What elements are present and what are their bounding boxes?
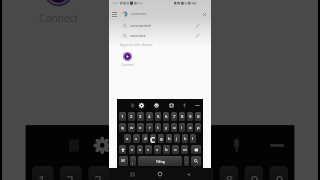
button[interactable]: 8 xyxy=(219,166,238,180)
staticText: 8 xyxy=(226,172,235,180)
button[interactable]: h xyxy=(166,134,172,143)
staticText: C xyxy=(150,134,156,143)
button[interactable]: d xyxy=(142,134,148,143)
staticText: 1 xyxy=(121,114,124,120)
button[interactable]: j xyxy=(174,134,180,143)
button[interactable]: 5 xyxy=(155,112,161,121)
staticText: 9 xyxy=(251,172,260,180)
button[interactable]: 9 xyxy=(244,166,263,180)
staticText: t xyxy=(157,125,159,131)
button[interactable]: connected xyxy=(109,21,211,31)
staticText: 2 xyxy=(130,114,133,120)
staticText: 4 xyxy=(148,114,151,120)
button[interactable]: C xyxy=(150,134,156,143)
button[interactable]: Shift xyxy=(119,145,126,154)
staticText: 1 xyxy=(38,172,47,180)
button[interactable]: Translate xyxy=(167,101,175,109)
button[interactable]: Emoji xyxy=(135,131,160,156)
button[interactable]: v xyxy=(154,145,161,154)
button[interactable]: Voice xyxy=(222,131,247,156)
button[interactable]: 3 xyxy=(137,112,144,121)
button[interactable]: Home xyxy=(155,169,165,179)
button[interactable]: Search xyxy=(191,156,201,166)
staticText: 4 xyxy=(122,172,132,180)
button[interactable]: z xyxy=(129,145,135,154)
button[interactable]: Settings xyxy=(137,101,145,109)
button[interactable]: o xyxy=(187,123,193,132)
staticText: 5 xyxy=(151,172,160,180)
button[interactable]: Recents xyxy=(127,169,137,179)
button[interactable]: Menu xyxy=(110,10,119,19)
staticText: c xyxy=(147,147,150,153)
button[interactable]: Translate xyxy=(182,131,207,156)
button[interactable]: k xyxy=(182,134,188,143)
button[interactable]: 2 xyxy=(128,112,135,121)
button[interactable]: , xyxy=(130,156,136,166)
button[interactable]: 4 xyxy=(116,166,138,180)
staticText: l xyxy=(192,136,194,142)
button[interactable]: Clipboard xyxy=(128,101,136,109)
button[interactable]: More options xyxy=(193,101,201,109)
button[interactable]: a xyxy=(124,134,131,143)
button[interactable]: r xyxy=(146,123,153,132)
button[interactable]: 7 xyxy=(194,166,213,180)
button[interactable]: b xyxy=(163,145,170,154)
button[interactable]: y xyxy=(163,123,169,132)
button[interactable]: 5 xyxy=(144,166,163,180)
button[interactable]: Emoji xyxy=(152,101,160,109)
button[interactable]: 1 xyxy=(32,166,54,180)
button[interactable]: Settings xyxy=(88,131,113,156)
button[interactable]: e xyxy=(137,123,144,132)
button[interactable]: s xyxy=(133,134,140,143)
button[interactable]: 6 xyxy=(163,112,169,121)
button[interactable]: t xyxy=(155,123,161,132)
staticText: connect xyxy=(131,11,147,17)
staticText: u xyxy=(173,125,176,131)
button[interactable]: 9 xyxy=(187,112,193,121)
staticText: connected xyxy=(130,23,151,29)
staticText: w xyxy=(130,125,134,131)
button[interactable]: 8 xyxy=(179,112,185,121)
staticText: m xyxy=(183,147,187,153)
staticText: 3 xyxy=(139,114,142,120)
button[interactable]: Backspace xyxy=(191,145,201,154)
staticText: 7 xyxy=(173,114,176,120)
button[interactable]: connect xyxy=(109,31,211,41)
button[interactable]: w xyxy=(128,123,135,132)
button[interactable]: 0 xyxy=(195,112,201,121)
button[interactable]: 3 xyxy=(88,166,110,180)
staticText: n xyxy=(174,147,177,153)
staticText: p xyxy=(197,125,200,131)
button[interactable]: 1 xyxy=(119,112,126,121)
button[interactable]: u xyxy=(171,123,177,132)
button[interactable]: 2 xyxy=(60,166,82,180)
button[interactable]: Voice xyxy=(180,101,188,109)
button[interactable]: !#1 xyxy=(119,156,128,166)
button[interactable]: . xyxy=(184,156,189,166)
button[interactable]: Connect xyxy=(38,0,79,25)
button[interactable]: Tiếng xyxy=(138,156,182,166)
button[interactable]: Back xyxy=(183,169,193,179)
button[interactable]: p xyxy=(195,123,201,132)
button[interactable]: 4 xyxy=(146,112,153,121)
button[interactable]: m xyxy=(181,145,188,154)
button[interactable]: l xyxy=(190,134,196,143)
button[interactable]: 7 xyxy=(171,112,177,121)
button[interactable]: i xyxy=(179,123,185,132)
button[interactable]: More options xyxy=(263,131,288,156)
button[interactable]: Clear xyxy=(200,10,209,19)
button[interactable]: n xyxy=(172,145,179,154)
button[interactable]: x xyxy=(137,145,143,154)
staticText: y xyxy=(165,125,168,131)
button[interactable]: Connect xyxy=(121,52,134,67)
button[interactable]: Clipboard xyxy=(60,131,85,156)
button[interactable]: 0 xyxy=(269,166,288,180)
button[interactable]: c xyxy=(145,145,152,154)
button[interactable]: Menu xyxy=(109,7,211,21)
staticText: s xyxy=(135,136,138,142)
button[interactable]: g xyxy=(158,134,164,143)
button[interactable]: q xyxy=(119,123,126,132)
